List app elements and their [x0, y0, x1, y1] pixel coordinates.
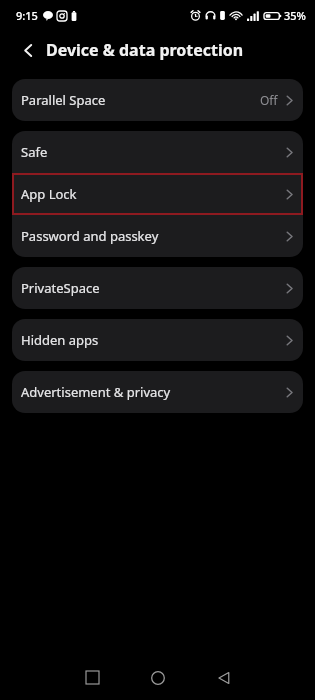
button[interactable]: Password and passkey	[12, 215, 303, 257]
button[interactable]: App Lock	[12, 173, 303, 215]
staticText: PrivateSpace	[21, 279, 100, 297]
button[interactable]: Back	[201, 655, 247, 700]
button[interactable]: PrivateSpace	[12, 267, 303, 309]
button[interactable]: Parallel Space	[12, 79, 303, 121]
staticText: Off	[260, 92, 278, 108]
staticText: 9:15	[16, 8, 38, 23]
staticText: Device & data protection	[46, 39, 244, 61]
button[interactable]: Safe	[12, 131, 303, 173]
staticText: Parallel Space	[21, 91, 106, 109]
button[interactable]: Home	[135, 655, 181, 700]
staticText: Advertisement & privacy	[21, 383, 171, 401]
staticText: App Lock	[21, 185, 77, 203]
button[interactable]: Advertisement & privacy	[12, 371, 303, 413]
button[interactable]: Recents	[69, 655, 115, 700]
button[interactable]: Back	[14, 36, 43, 65]
staticText: Safe	[21, 143, 48, 161]
staticText: Hidden apps	[21, 331, 99, 349]
staticText: 35%	[284, 8, 306, 23]
staticText: Password and passkey	[21, 227, 159, 245]
button[interactable]: Hidden apps	[12, 319, 303, 361]
